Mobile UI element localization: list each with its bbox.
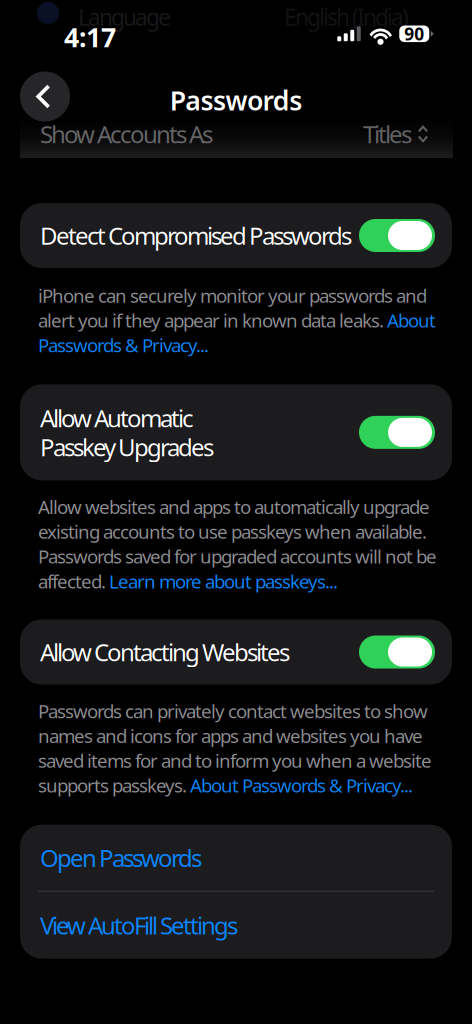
button[interactable]: Back bbox=[20, 71, 70, 121]
staticText: 90 bbox=[404, 22, 424, 45]
staticText: iPhone can securely monitor your passwor… bbox=[38, 283, 436, 357]
staticText: Passkey Upgrades bbox=[40, 431, 214, 463]
staticText: View AutoFill Settings bbox=[40, 909, 238, 941]
button[interactable]: Open Passwords bbox=[20, 825, 452, 891]
button[interactable]: Allow Automatic Passkey Upgrades bbox=[20, 384, 452, 480]
staticText: English (India) bbox=[284, 2, 409, 32]
staticText: Open Passwords bbox=[40, 842, 202, 874]
staticText: Show Accounts As bbox=[40, 118, 213, 150]
button[interactable]: View AutoFill Settings bbox=[20, 892, 452, 959]
button[interactable]: Allow Contacting Websites bbox=[20, 619, 452, 684]
staticText: Language bbox=[78, 2, 171, 32]
staticText: Passwords bbox=[170, 82, 302, 118]
staticText: Allow Contacting Websites bbox=[40, 636, 290, 668]
button[interactable]: Detect Compromised Passwords bbox=[20, 203, 452, 268]
staticText: 4:17 bbox=[64, 19, 116, 55]
staticText: Titles bbox=[363, 118, 412, 150]
staticText: Detect Compromised Passwords bbox=[40, 220, 352, 251]
staticText: Allow Automatic bbox=[40, 402, 194, 434]
staticText: Passwords can privately contact websites… bbox=[38, 698, 432, 798]
staticText: Allow websites and apps to automatically… bbox=[38, 494, 437, 594]
